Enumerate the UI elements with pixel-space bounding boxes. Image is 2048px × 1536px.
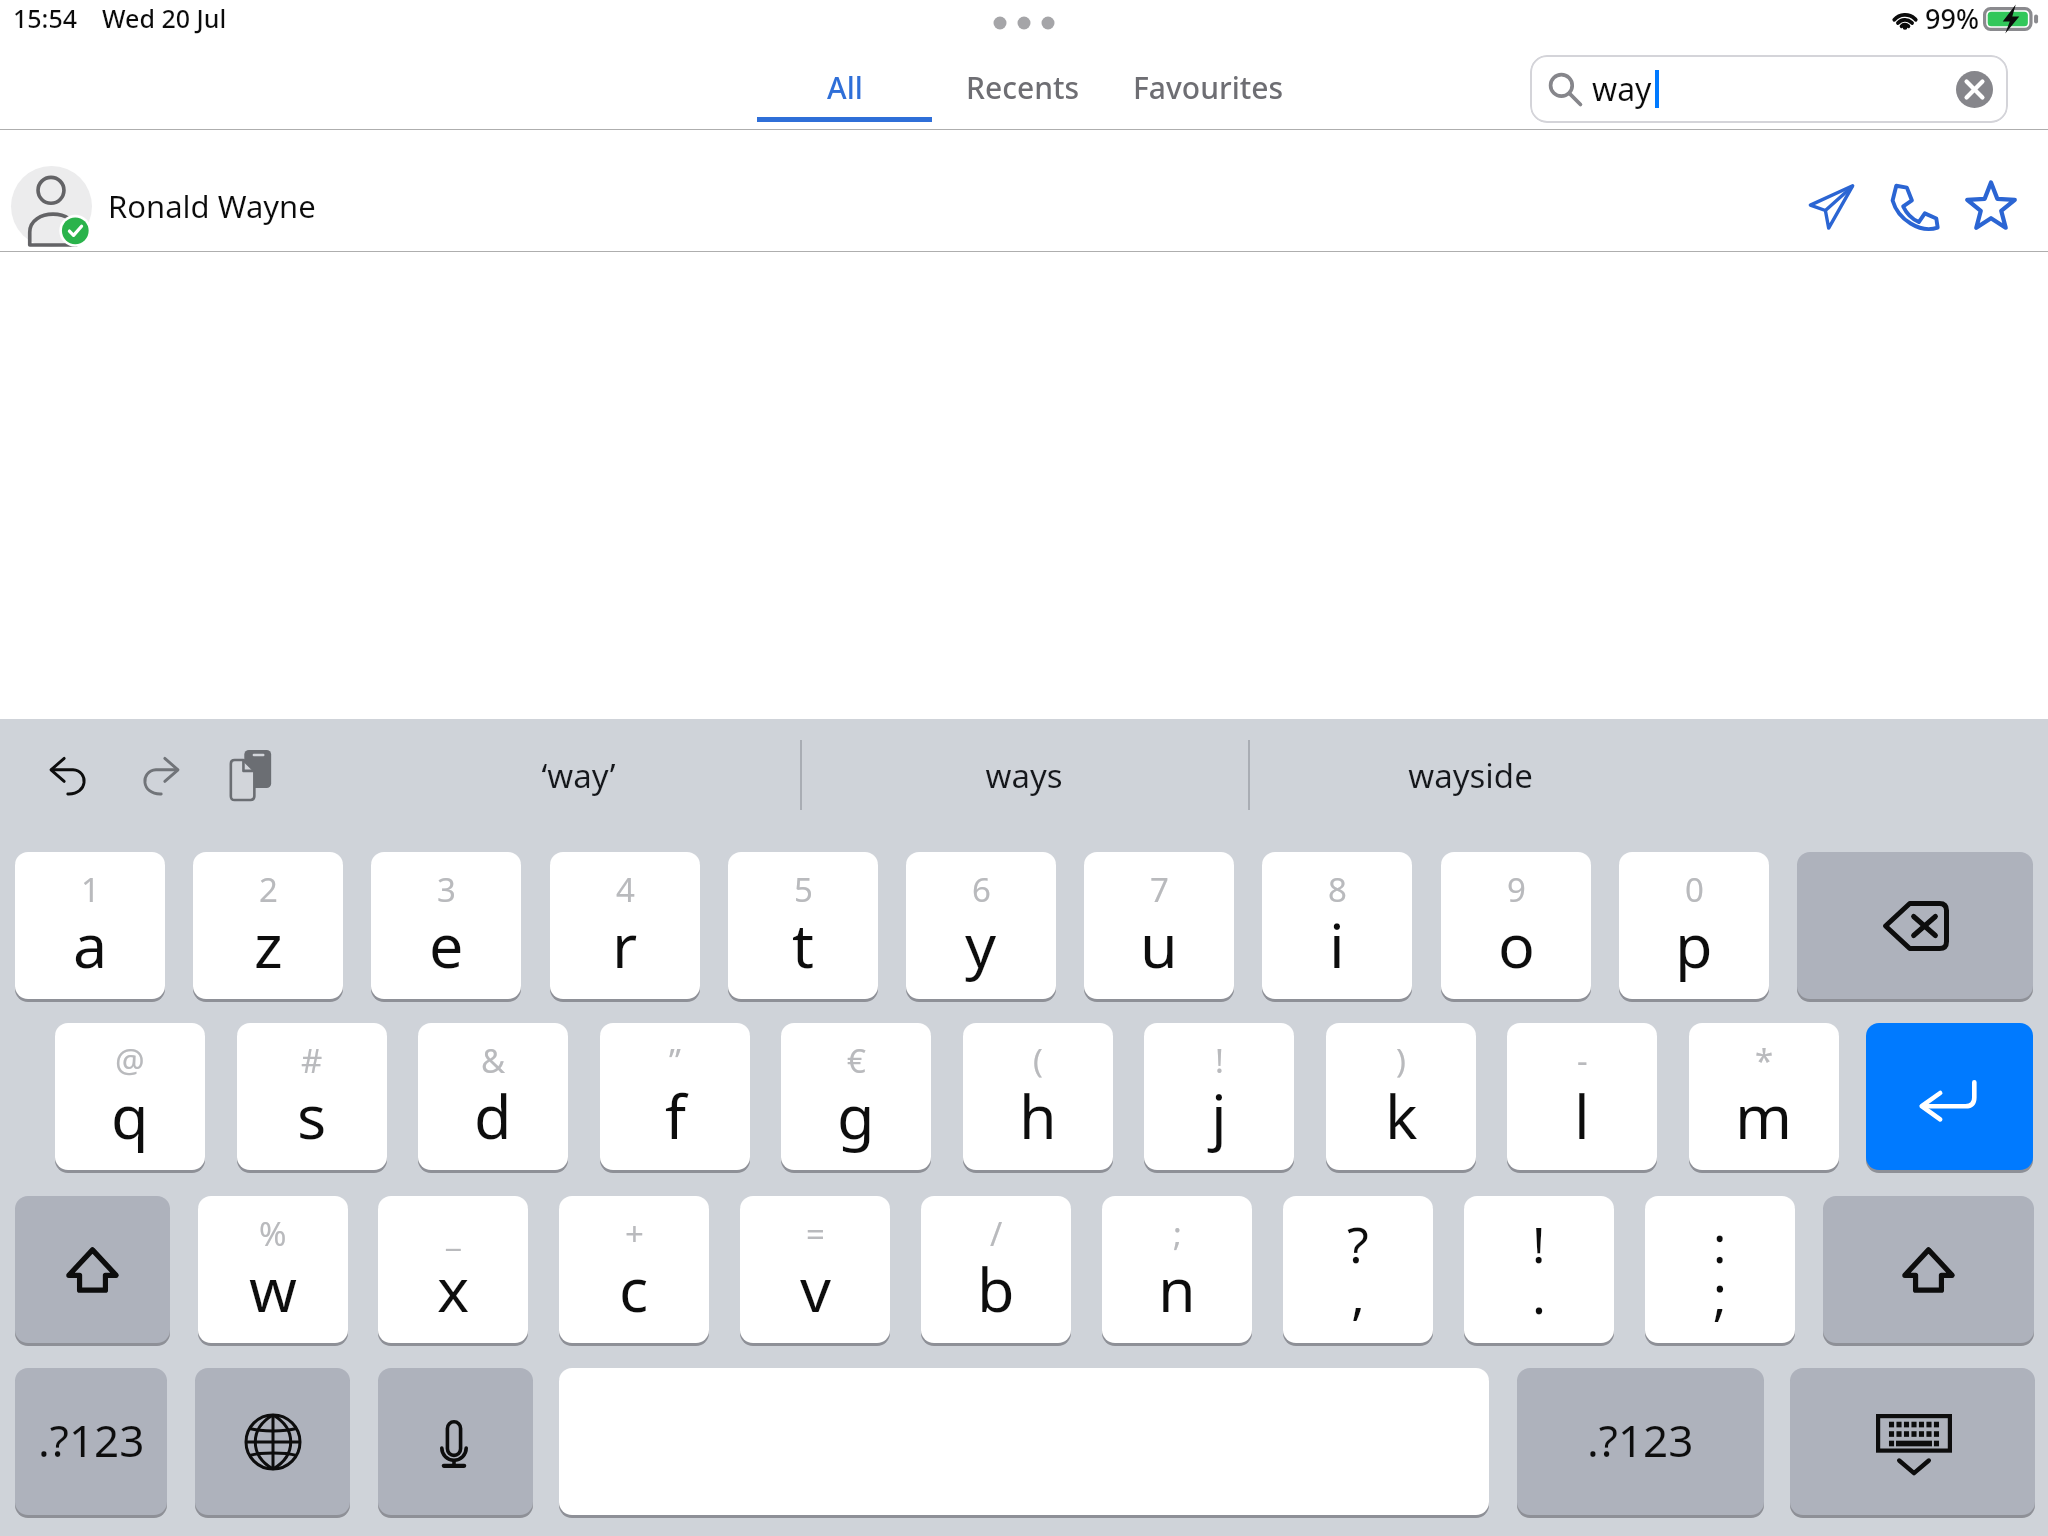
button[interactable]: Space: [559, 1368, 1489, 1518]
staticText: y: [965, 903, 997, 986]
staticText: l: [1574, 1074, 1590, 1157]
button[interactable]: _: [378, 1196, 528, 1346]
button[interactable]: %: [198, 1196, 348, 1346]
staticText: z: [254, 903, 283, 986]
staticText: All: [827, 67, 863, 108]
button[interactable]: €: [781, 1023, 931, 1173]
button[interactable]: Change keyboard: [195, 1368, 350, 1518]
button[interactable]: &: [418, 1023, 568, 1173]
staticText: ;: [1173, 1211, 1182, 1256]
button[interactable]: .?123: [15, 1368, 167, 1518]
staticText: Recents: [966, 67, 1080, 108]
button[interactable]: #: [237, 1023, 387, 1173]
button[interactable]: Favourites: [1114, 46, 1302, 130]
staticText: 8: [1328, 867, 1347, 912]
button[interactable]: +: [559, 1196, 709, 1346]
button[interactable]: ): [1326, 1023, 1476, 1173]
staticText: @: [115, 1038, 145, 1083]
staticText: c: [619, 1247, 649, 1330]
staticText: d: [474, 1074, 512, 1157]
staticText: ‘way’: [541, 753, 616, 798]
button[interactable]: Hide keyboard: [1790, 1368, 2035, 1518]
button[interactable]: ”: [600, 1023, 750, 1173]
button[interactable]: !: [1464, 1196, 1614, 1346]
button[interactable]: ‘way’: [378, 719, 778, 831]
button[interactable]: ;: [1102, 1196, 1252, 1346]
button[interactable]: way: [1530, 55, 2008, 123]
button[interactable]: .?123: [1517, 1368, 1764, 1518]
button[interactable]: /: [921, 1196, 1071, 1346]
button[interactable]: Undo: [32, 739, 106, 813]
staticText: 1: [81, 867, 100, 912]
button[interactable]: -: [1507, 1023, 1657, 1173]
staticText: j: [1211, 1074, 1227, 1157]
staticText: ,: [1351, 1258, 1365, 1329]
button[interactable]: 1: [15, 852, 165, 1002]
staticText: f: [665, 1074, 686, 1157]
staticText: r: [612, 903, 638, 986]
staticText: 9: [1507, 867, 1526, 912]
button[interactable]: ?: [1283, 1196, 1433, 1346]
staticText: Favourites: [1133, 67, 1284, 108]
button[interactable]: Call: [1874, 169, 1948, 243]
button[interactable]: All: [757, 46, 932, 130]
staticText: /: [990, 1211, 1003, 1256]
button[interactable]: 6: [906, 852, 1056, 1002]
button[interactable]: Favourite: [1954, 169, 2028, 243]
staticText: -: [1577, 1038, 1588, 1083]
staticText: h: [1019, 1074, 1057, 1157]
staticText: s: [297, 1074, 327, 1157]
staticText: 0: [1685, 867, 1704, 912]
button[interactable]: :: [1645, 1196, 1795, 1346]
staticText: p: [1675, 903, 1713, 986]
staticText: wayside: [1408, 753, 1533, 798]
button[interactable]: 7: [1084, 852, 1234, 1002]
button[interactable]: ways: [824, 719, 1224, 831]
button[interactable]: Ronald Wayne: [0, 130, 2048, 252]
button[interactable]: 2: [193, 852, 343, 1002]
staticText: .?123: [38, 1410, 145, 1470]
staticText: u: [1140, 903, 1178, 986]
staticText: q: [111, 1074, 149, 1157]
button[interactable]: Paste: [214, 738, 288, 812]
staticText: 99%: [1925, 0, 1979, 37]
staticText: o: [1498, 903, 1535, 986]
staticText: &: [481, 1038, 506, 1083]
staticText: w: [249, 1247, 297, 1330]
button[interactable]: !: [1144, 1023, 1294, 1173]
button[interactable]: 3: [371, 852, 521, 1002]
button[interactable]: Backspace: [1797, 852, 2033, 1002]
staticText: 6: [972, 867, 991, 912]
button[interactable]: Redo: [123, 739, 197, 813]
button[interactable]: (: [963, 1023, 1113, 1173]
button[interactable]: Recents: [932, 46, 1114, 130]
button[interactable]: @: [55, 1023, 205, 1173]
staticText: ?: [1347, 1210, 1369, 1278]
staticText: 3: [437, 867, 456, 912]
staticText: ;: [1713, 1258, 1727, 1329]
staticText: (: [1033, 1038, 1043, 1083]
button[interactable]: 9: [1441, 852, 1591, 1002]
button[interactable]: Return: [1866, 1023, 2033, 1173]
staticText: n: [1158, 1247, 1196, 1330]
button[interactable]: Shift: [1823, 1196, 2034, 1346]
button[interactable]: =: [740, 1196, 890, 1346]
button[interactable]: Clear search: [1956, 71, 1993, 108]
staticText: way: [1592, 67, 1652, 111]
staticText: t: [792, 903, 815, 986]
staticText: +: [625, 1211, 644, 1256]
button[interactable]: wayside: [1270, 719, 1670, 831]
staticText: %: [259, 1211, 287, 1256]
staticText: b: [977, 1247, 1015, 1330]
staticText: #: [301, 1038, 323, 1083]
button[interactable]: 5: [728, 852, 878, 1002]
staticText: !: [1532, 1210, 1546, 1278]
button[interactable]: 0: [1619, 852, 1769, 1002]
button[interactable]: Dictate: [378, 1368, 533, 1518]
button[interactable]: Send message: [1794, 169, 1868, 243]
button[interactable]: 8: [1262, 852, 1412, 1002]
button[interactable]: Shift: [15, 1196, 170, 1346]
button[interactable]: 4: [550, 852, 700, 1002]
button[interactable]: *: [1689, 1023, 1839, 1173]
staticText: 7: [1150, 867, 1169, 912]
